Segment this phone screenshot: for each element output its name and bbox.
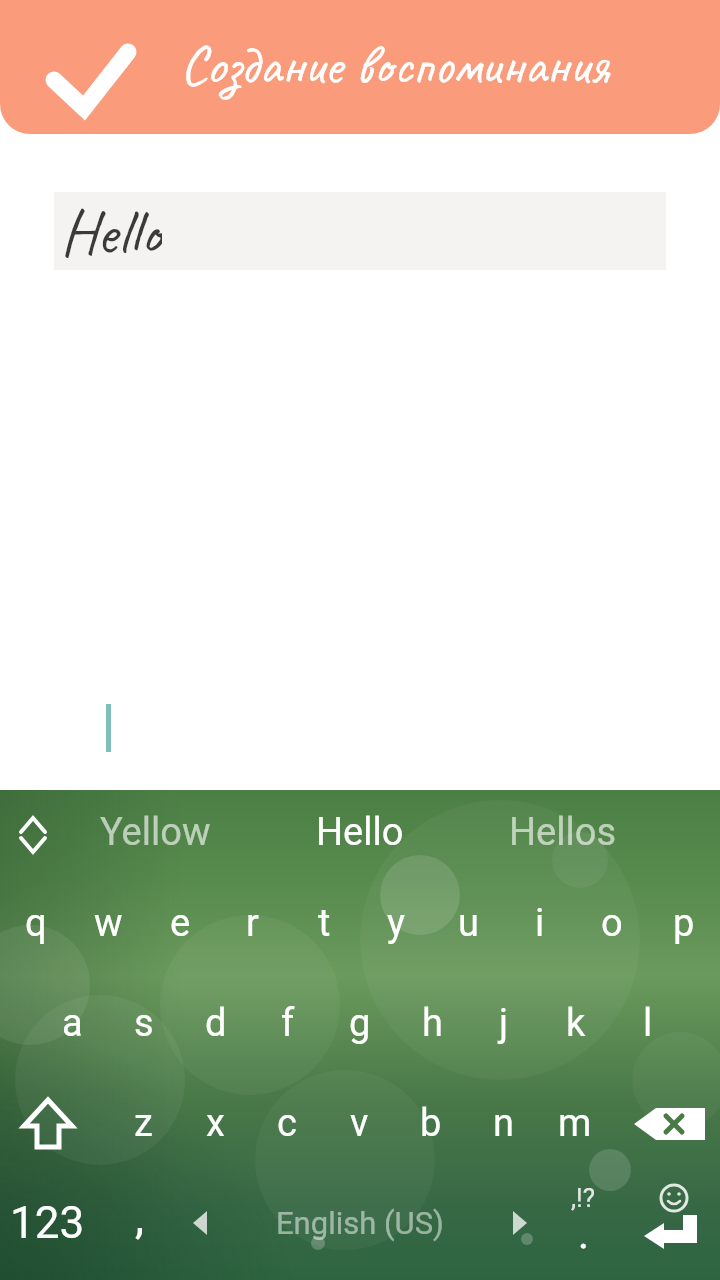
staticText: Yellow [100, 810, 211, 855]
staticText: s [134, 1001, 154, 1046]
staticText: d [205, 1001, 227, 1046]
staticText: k [566, 1001, 586, 1046]
staticText: j [499, 1001, 509, 1046]
staticText: a [62, 1001, 83, 1046]
staticText: Создание воспоминания [180, 29, 610, 100]
staticText: w [94, 901, 123, 946]
staticText: Hello [316, 810, 404, 855]
staticText: c [277, 1101, 297, 1146]
staticText: m [558, 1101, 592, 1146]
staticText: Hellos [509, 810, 617, 855]
staticText: f [281, 1001, 295, 1046]
staticText: t [318, 901, 331, 946]
staticText: ,!? [571, 1183, 596, 1213]
staticText: English (US) [276, 1205, 444, 1241]
staticText: h [422, 1001, 443, 1046]
staticText: r [246, 901, 259, 946]
staticText: p [673, 901, 695, 946]
staticText: 123 [10, 1197, 85, 1249]
staticText: , [135, 1190, 145, 1244]
staticText: y [387, 901, 405, 946]
staticText: z [134, 1101, 153, 1146]
staticText: Hello [60, 192, 162, 270]
staticText: o [601, 901, 623, 946]
staticText: b [420, 1101, 442, 1146]
staticText: . [579, 1216, 588, 1256]
staticText: q [25, 901, 47, 946]
staticText: e [170, 901, 191, 946]
staticText: l [643, 1001, 653, 1046]
staticText: n [493, 1101, 514, 1146]
staticText: v [350, 1101, 369, 1146]
staticText: x [206, 1101, 225, 1146]
staticText: u [458, 901, 479, 946]
staticText: g [349, 1001, 371, 1046]
staticText: i [535, 901, 545, 946]
